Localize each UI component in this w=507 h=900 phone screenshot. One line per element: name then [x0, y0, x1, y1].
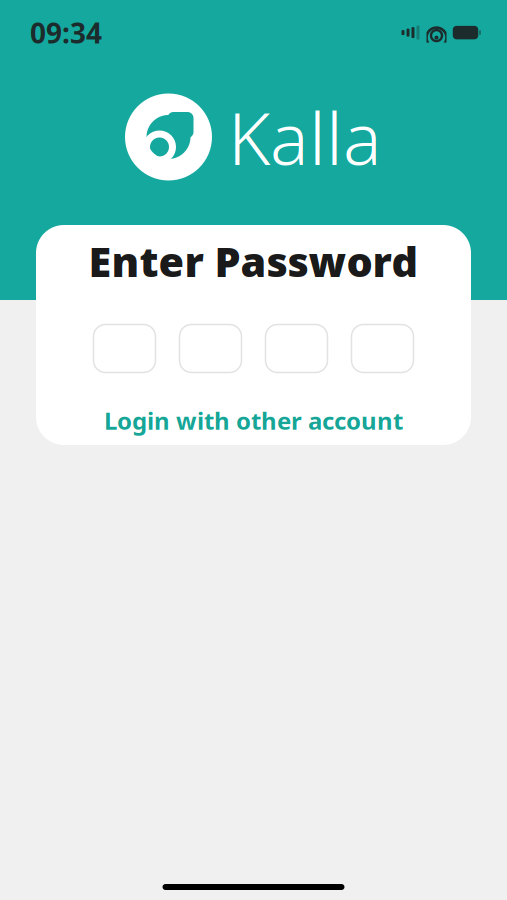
button[interactable]: Password digit [351, 324, 413, 372]
button[interactable]: Password digit [265, 324, 327, 372]
staticText: Login with other account [104, 404, 403, 436]
staticText: Enter Password [88, 234, 418, 288]
button[interactable]: Password digit [179, 324, 241, 372]
staticText: 09:34 [30, 14, 102, 51]
button[interactable]: Login with other account [94, 398, 413, 442]
button[interactable]: Password digit [93, 324, 155, 372]
staticText: Kalla [228, 89, 382, 185]
